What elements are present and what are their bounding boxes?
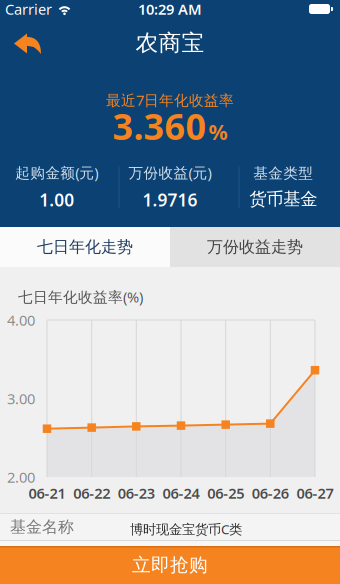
staticText: 3.00 [7,389,35,408]
staticText: 基金名称 [10,517,74,537]
staticText: 货币基金 [249,188,317,210]
staticText: 06-26 [252,483,289,503]
staticText: Carrier [5,0,52,19]
staticText: 1.9716 [142,188,197,211]
button[interactable]: 七日年化走势 [0,227,170,267]
staticText: 七日年化走势 [37,237,133,257]
staticText: 10:29 AM [138,0,202,19]
staticText: 06-27 [296,483,333,503]
staticText: 万份收益走势 [207,237,303,257]
staticText: 06-24 [162,483,199,503]
staticText: 4.00 [7,310,35,330]
staticText: 万份收益(元) [128,163,211,182]
staticText: 起购金额(元) [15,163,98,182]
button[interactable]: 万份收益走势 [170,227,340,267]
staticText: 06-21 [28,483,65,503]
button[interactable]: 立即抢购 [0,546,340,584]
staticText: 农商宝 [135,29,204,57]
staticText: 06-25 [207,483,244,503]
button[interactable]: Back [0,27,41,54]
staticText: 基金类型 [253,164,313,182]
staticText: 2.00 [7,467,35,487]
staticText: 06-23 [118,483,155,503]
staticText: 06-22 [73,483,110,503]
staticText: 七日年化收益率(%) [18,287,143,306]
staticText: 1.00 [39,188,74,211]
staticText: 博时现金宝货币C类 [130,520,242,538]
staticText: 立即抢购 [132,553,208,576]
staticText: 3.360 [112,102,206,150]
staticText: 最近7日年化收益率 [106,90,234,110]
staticText: % [208,117,227,146]
